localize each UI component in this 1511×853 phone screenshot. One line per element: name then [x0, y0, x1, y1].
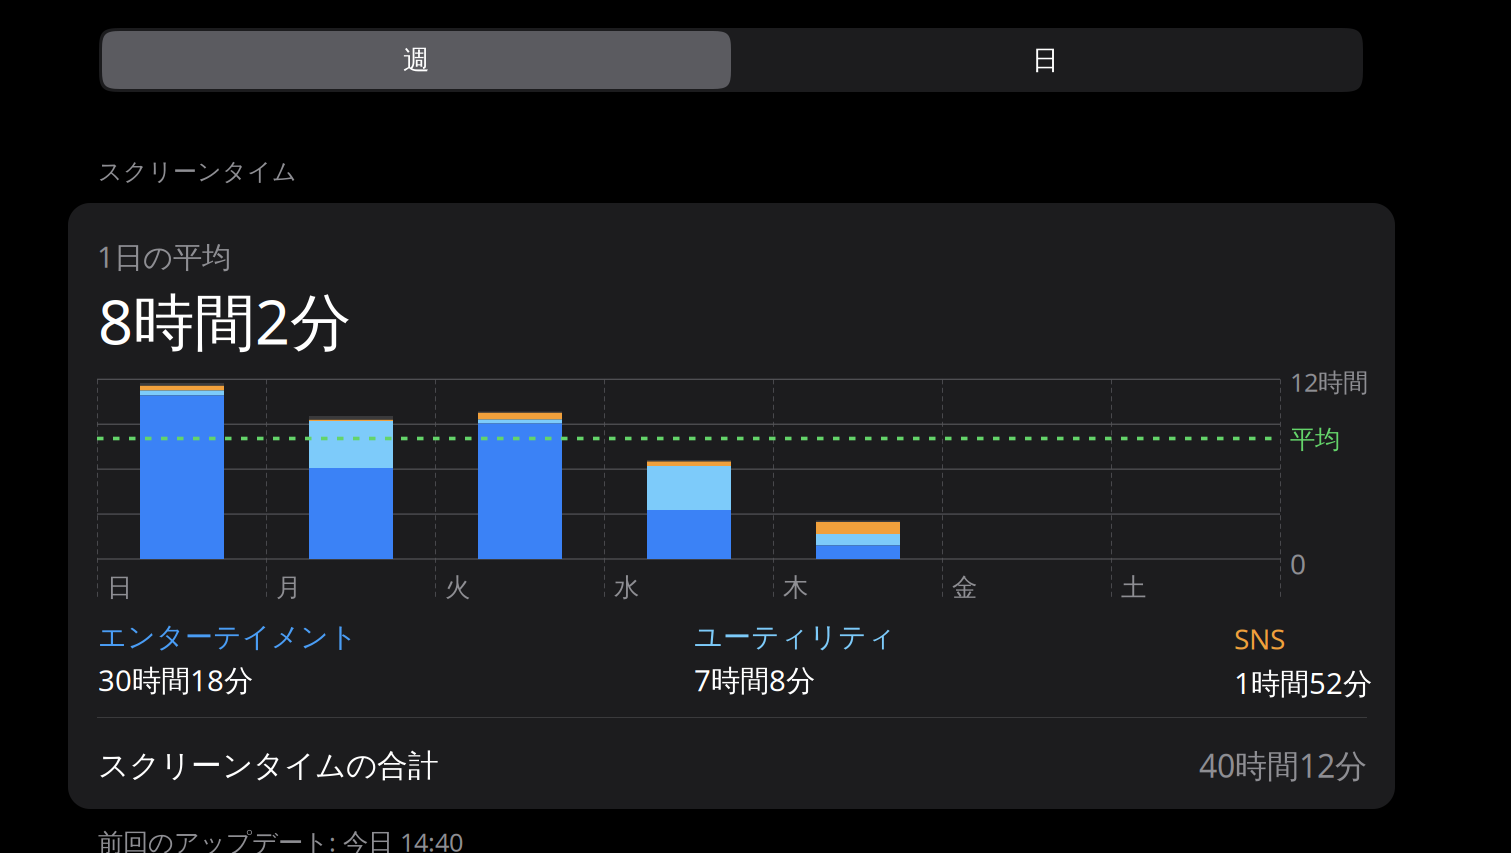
staticText: 1時間52分 [1234, 663, 1372, 702]
button[interactable] [68, 203, 1395, 809]
staticText: スクリーンタイム [98, 157, 297, 186]
staticText: 週 [403, 44, 430, 76]
button[interactable]: 週 [102, 31, 731, 89]
staticText: 平均 [1290, 424, 1340, 455]
staticText: 7時間8分 [694, 660, 815, 699]
button[interactable]: 日 [731, 31, 1360, 89]
staticText: エンターテイメント [98, 620, 358, 654]
staticText: 木 [783, 572, 808, 603]
staticText: 0 [1290, 545, 1306, 582]
staticText: 前回のアップデート: 今日 14:40 [98, 825, 463, 853]
staticText: 12時間 [1290, 365, 1368, 399]
staticText: 金 [952, 572, 977, 603]
staticText: 40時間12分 [1199, 744, 1367, 786]
staticText: 日 [1032, 44, 1059, 76]
staticText: 1日の平均 [97, 237, 231, 276]
staticText: 月 [276, 572, 301, 603]
staticText: 水 [614, 572, 639, 603]
staticText: 火 [445, 572, 470, 603]
staticText: SNS [1234, 620, 1285, 657]
staticText: 30時間18分 [98, 660, 253, 699]
staticText: ユーティリティ [694, 620, 896, 654]
staticText: 土 [1121, 572, 1146, 603]
staticText: 日 [107, 572, 132, 603]
staticText: 8時間2分 [98, 280, 351, 361]
staticText: スクリーンタイムの合計 [98, 747, 439, 785]
